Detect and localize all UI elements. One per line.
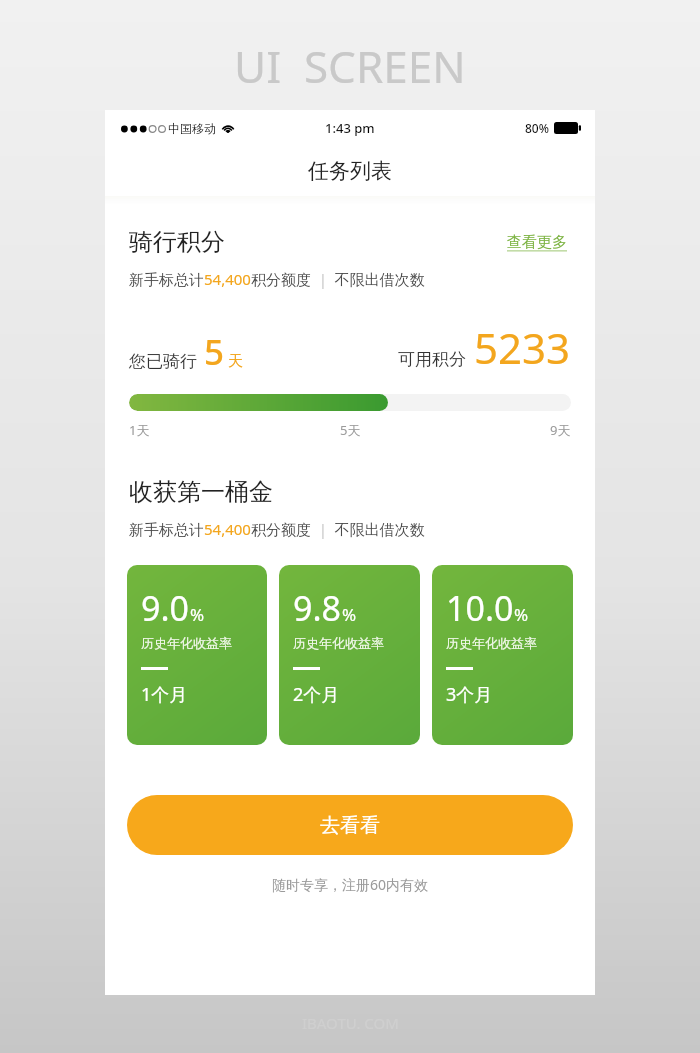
staticText: 2个月 xyxy=(293,682,340,707)
staticText: 5天 xyxy=(340,421,361,439)
staticText: 历史年化收益率 xyxy=(141,635,232,651)
staticText: 9.0 xyxy=(141,585,190,631)
button[interactable]: 9.8 xyxy=(279,565,420,745)
button[interactable]: 10.0 xyxy=(432,565,573,745)
staticText: 10.0 xyxy=(446,585,514,631)
staticText: 9天 xyxy=(550,421,571,439)
staticText: UI SCREEN xyxy=(234,36,466,96)
staticText: % xyxy=(190,603,205,626)
staticText: 可用积分 xyxy=(398,349,466,370)
staticText: 新手标总计54,400积分额度 | 不限出借次数 xyxy=(129,519,425,539)
staticText: 5233 xyxy=(474,319,571,376)
staticText: 9.8 xyxy=(293,585,342,631)
staticText: 5 xyxy=(204,328,225,376)
staticText: 查看更多 xyxy=(507,233,567,252)
staticText: 收获第一桶金 xyxy=(129,477,273,507)
button[interactable]: 查看更多 xyxy=(503,228,571,257)
staticText: % xyxy=(514,603,529,626)
staticText: 骑行积分 xyxy=(129,227,225,257)
staticText: 80% xyxy=(525,120,549,136)
button[interactable]: 9.0 xyxy=(127,565,267,745)
staticText: 天 xyxy=(228,352,243,371)
staticText: 中国移动 xyxy=(168,121,216,136)
staticText: 1天 xyxy=(129,421,150,439)
staticText: 1个月 xyxy=(141,682,188,707)
staticText: 历史年化收益率 xyxy=(446,635,537,651)
staticText: 历史年化收益率 xyxy=(293,635,384,651)
button[interactable]: 去看看 xyxy=(127,795,573,855)
staticText: 您已骑行 xyxy=(129,351,197,372)
staticText: 任务列表 xyxy=(308,158,392,184)
staticText: 1:43 pm xyxy=(325,119,375,137)
staticText: 3个月 xyxy=(446,682,493,707)
staticText: 随时专享，注册60内有效 xyxy=(272,875,429,894)
staticText: 去看看 xyxy=(320,813,380,838)
staticText: % xyxy=(342,603,357,626)
staticText: 新手标总计54,400积分额度 | 不限出借次数 xyxy=(129,269,425,289)
